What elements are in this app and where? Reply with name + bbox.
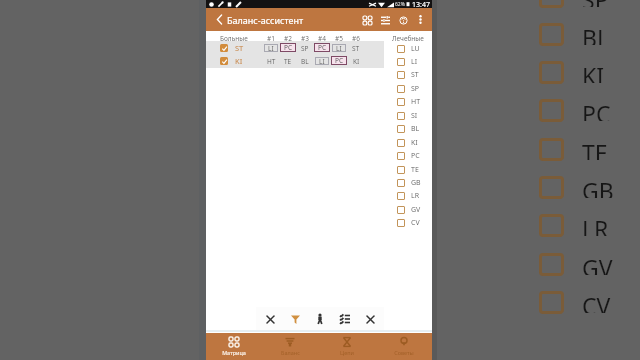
button[interactable]: LU bbox=[397, 42, 433, 55]
button[interactable]: Checklist bbox=[334, 307, 356, 331]
staticText: BL bbox=[301, 57, 309, 65]
staticText: PC bbox=[582, 98, 611, 121]
button[interactable]: Матрица bbox=[206, 333, 262, 360]
button[interactable]: Person bbox=[309, 307, 331, 331]
staticText: #5 bbox=[335, 34, 343, 43]
staticText: GV bbox=[411, 205, 421, 215]
button[interactable]: CV bbox=[397, 216, 433, 229]
staticText: CV bbox=[582, 290, 611, 313]
staticText: SI bbox=[411, 111, 418, 121]
staticText: KI bbox=[582, 60, 605, 83]
button[interactable]: KI bbox=[397, 136, 433, 149]
button[interactable]: GV bbox=[397, 203, 433, 216]
staticText: LI bbox=[411, 57, 418, 67]
staticText: #3 bbox=[301, 34, 309, 43]
staticText: Лечебные bbox=[392, 34, 424, 43]
button[interactable]: Filter bbox=[284, 307, 306, 331]
staticText: 13:47 bbox=[412, 0, 430, 8]
staticText: ST bbox=[411, 70, 419, 80]
button[interactable]: More options bbox=[412, 8, 428, 31]
staticText: #1 bbox=[267, 34, 275, 43]
staticText: LI bbox=[319, 57, 325, 65]
button[interactable]: SP bbox=[397, 82, 433, 95]
button[interactable]: TE bbox=[397, 163, 433, 176]
staticText: PC bbox=[284, 43, 293, 52]
staticText: BL bbox=[582, 22, 610, 45]
staticText: BL bbox=[411, 124, 420, 134]
staticText: Баланс-ассистент bbox=[227, 14, 304, 26]
button[interactable]: PC bbox=[397, 149, 433, 162]
staticText: LI bbox=[336, 44, 342, 52]
staticText: ST bbox=[235, 43, 244, 53]
button[interactable]: Settings bbox=[376, 9, 394, 31]
staticText: CV bbox=[411, 218, 420, 228]
button[interactable]: HT bbox=[397, 95, 433, 108]
button[interactable]: ST bbox=[397, 68, 433, 81]
staticText: PC bbox=[318, 43, 327, 52]
button[interactable]: BL bbox=[397, 122, 433, 135]
staticText: GB bbox=[582, 175, 614, 198]
staticText: #4 bbox=[318, 34, 326, 43]
staticText: TE bbox=[284, 57, 292, 65]
staticText: KI bbox=[353, 57, 360, 65]
staticText: 62% bbox=[395, 1, 405, 8]
button[interactable]: KI bbox=[206, 54, 384, 67]
staticText: LR bbox=[411, 191, 420, 201]
staticText: LR bbox=[582, 213, 609, 236]
staticText: Советы bbox=[394, 349, 414, 356]
button[interactable]: Help bbox=[394, 9, 412, 31]
button[interactable]: LR bbox=[397, 189, 433, 202]
button[interactable]: Matrix view bbox=[358, 9, 376, 31]
staticText: #2 bbox=[284, 34, 292, 43]
staticText: Матрица bbox=[222, 349, 246, 356]
staticText: Больные bbox=[220, 34, 248, 43]
button[interactable]: GB bbox=[397, 176, 433, 189]
staticText: HT bbox=[411, 97, 421, 107]
button[interactable]: Close bbox=[259, 307, 281, 331]
button[interactable]: SI bbox=[397, 109, 433, 122]
button[interactable]: Clear bbox=[359, 307, 381, 331]
staticText: Баланс bbox=[281, 349, 300, 356]
button[interactable]: LI bbox=[397, 55, 433, 68]
staticText: KI bbox=[235, 56, 243, 66]
button[interactable]: Советы bbox=[375, 333, 432, 360]
staticText: TE bbox=[411, 165, 419, 175]
staticText: SP bbox=[301, 44, 309, 52]
staticText: GB bbox=[411, 178, 421, 188]
staticText: HT bbox=[267, 57, 276, 65]
button[interactable]: Баланс bbox=[262, 333, 318, 360]
staticText: SP bbox=[582, 0, 609, 7]
staticText: #6 bbox=[352, 34, 360, 43]
staticText: ST bbox=[352, 44, 360, 52]
staticText: SP bbox=[411, 84, 420, 94]
staticText: PC bbox=[411, 151, 420, 161]
staticText: GV bbox=[582, 252, 613, 275]
button[interactable]: Цепи bbox=[318, 333, 375, 360]
button[interactable]: ST bbox=[206, 41, 384, 54]
staticText: LU bbox=[411, 44, 420, 54]
staticText: TE bbox=[582, 137, 608, 160]
staticText: KI bbox=[411, 138, 418, 148]
staticText: Цепи bbox=[340, 349, 354, 356]
button[interactable]: Back bbox=[211, 8, 227, 31]
staticText: LI bbox=[268, 44, 274, 52]
staticText: PC bbox=[335, 56, 344, 65]
